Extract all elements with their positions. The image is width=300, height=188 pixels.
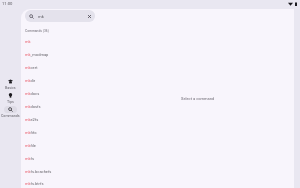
staticText: mke2fs: [25, 117, 39, 122]
staticText: Select a command: [181, 96, 215, 101]
staticText: mkdocs: [25, 91, 40, 96]
staticText: mk: [38, 14, 44, 19]
staticText: mk: [25, 39, 31, 44]
staticText: mkfifo: [25, 130, 37, 135]
button[interactable]: Commands: [0, 106, 21, 120]
button[interactable]: mk: [25, 10, 95, 22]
button[interactable]: mkfs: [21, 152, 101, 165]
button[interactable]: mkdir: [21, 74, 101, 87]
button[interactable]: mkfs.btrfs: [21, 178, 101, 188]
button[interactable]: mkdocs: [21, 87, 101, 100]
staticText: mkdir: [25, 78, 36, 83]
button[interactable]: mkcert: [21, 61, 101, 74]
staticText: mkfile: [25, 143, 36, 148]
staticText: mkdosfs: [25, 104, 41, 109]
button[interactable]: mkfifo: [21, 126, 101, 139]
staticText: Commands (36): [25, 29, 49, 33]
staticText: Tips: [7, 100, 14, 104]
staticText: mkfs: [25, 156, 34, 161]
button[interactable]: mkdosfs: [21, 100, 101, 113]
button[interactable]: Clear search: [87, 14, 92, 19]
staticText: 11:00: [2, 1, 13, 6]
button[interactable]: Tips: [0, 92, 21, 106]
button[interactable]: mkfs.bcachefs: [21, 165, 101, 178]
staticText: Commands: [1, 114, 20, 118]
button[interactable]: mke2fs: [21, 113, 101, 126]
staticText: mk_modmap: [25, 52, 49, 57]
button[interactable]: mk_modmap: [21, 48, 101, 61]
staticText: mkfs.bcachefs: [25, 169, 52, 174]
button[interactable]: mkfile: [21, 139, 101, 152]
staticText: Basics: [5, 86, 16, 90]
button[interactable]: Basics: [0, 78, 21, 92]
button[interactable]: mk: [21, 35, 101, 48]
staticText: mkcert: [25, 65, 38, 70]
staticText: mkfs.btrfs: [25, 181, 44, 186]
